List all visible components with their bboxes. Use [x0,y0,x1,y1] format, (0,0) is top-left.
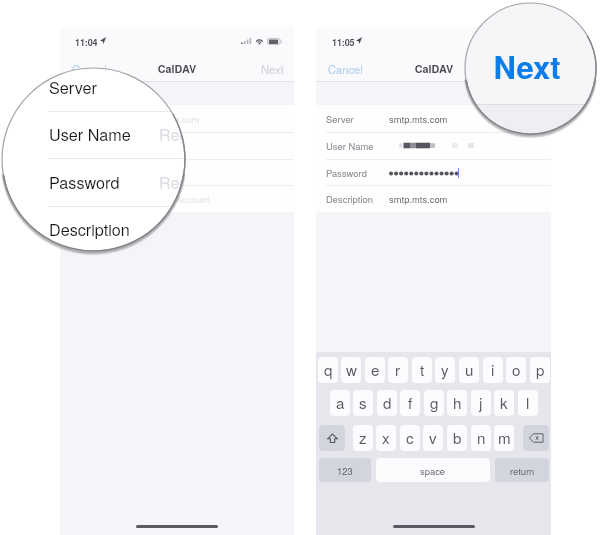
button[interactable]: f [400,390,420,416]
button[interactable]: Server [60,105,294,132]
button[interactable]: Description [316,185,551,212]
button[interactable]: x [376,425,396,451]
button[interactable]: Shift [319,425,345,451]
staticText: smtp.mts.com [141,112,200,125]
staticText: i [491,359,495,381]
staticText: g [430,392,439,414]
button[interactable]: Next [258,58,294,79]
staticText: o [512,359,521,381]
other: Location [356,37,362,44]
button[interactable]: w [341,357,361,383]
staticText: Password [326,166,367,179]
staticText: x [382,427,390,449]
button[interactable]: b [447,425,467,451]
button[interactable]: Password [316,159,551,186]
staticText: j [479,392,483,414]
staticText: return [510,464,535,477]
staticText: v [429,427,437,449]
staticText: Req [159,122,185,145]
staticText: Req [159,170,185,193]
staticText: User Name [326,139,374,152]
staticText: w [346,359,357,381]
staticText: Description [326,192,373,205]
button[interactable]: Password [60,159,294,186]
button[interactable]: h [447,390,467,416]
staticText: b [453,427,462,449]
button[interactable]: s [353,390,373,416]
staticText: k [500,392,508,414]
button[interactable]: Next [477,44,577,82]
staticText: a [336,392,345,414]
button[interactable]: g [424,390,444,416]
staticText: d [383,392,392,414]
staticText: Description [49,217,130,240]
button[interactable]: n [471,425,491,451]
button[interactable]: q [318,357,338,383]
staticText: CalDAV [137,61,217,76]
button[interactable]: r [388,357,408,383]
button[interactable]: o [506,357,526,383]
other: Location [100,37,106,44]
staticText: 11:04 [75,36,98,49]
staticText: e [371,359,380,381]
button[interactable]: k [494,390,514,416]
button[interactable]: u [459,357,479,383]
button[interactable]: 123 [319,458,371,482]
button[interactable]: i [483,357,503,383]
staticText: h [453,392,462,414]
staticText: space [420,464,446,477]
staticText: CalDAV [394,61,474,76]
button[interactable]: d [377,390,397,416]
button[interactable]: j [471,390,491,416]
button[interactable]: z [353,425,373,451]
staticText: Password [49,170,120,193]
staticText: Server [326,112,354,125]
staticText: Required [133,166,171,179]
staticText: c [406,427,414,449]
button[interactable]: Description [60,185,294,212]
staticText: f [408,392,413,414]
staticText: User Name [70,139,118,152]
button[interactable]: t [412,357,432,383]
staticText: l [526,392,530,414]
button[interactable]: m [494,425,514,451]
button[interactable]: User Name [60,132,294,159]
staticText: u [465,359,474,381]
button[interactable]: Backspace [523,425,549,451]
staticText: r [395,359,401,381]
staticText: z [359,427,367,449]
button[interactable]: l [518,390,538,416]
staticText: Server [49,75,97,98]
button[interactable]: space [376,458,490,482]
button[interactable]: Cancel [321,58,367,79]
staticText: 11:05 [332,36,355,49]
button[interactable]: y [435,357,455,383]
button[interactable]: return [495,458,549,482]
staticText: y [441,359,449,381]
other: Wi-Fi [255,38,264,44]
staticText: Cancel [328,61,363,77]
staticText: n [477,427,486,449]
staticText: smtp.mts.com [389,112,448,125]
staticText: Next [261,61,284,77]
button[interactable]: Server [316,105,551,132]
staticText: Next [518,61,541,77]
button[interactable]: p [530,357,550,383]
button[interactable]: c [400,425,420,451]
staticText: s [359,392,367,414]
button[interactable]: Cancel [65,58,111,79]
staticText: User Name [49,122,131,145]
other: Cellular signal [241,38,252,44]
button[interactable]: e [365,357,385,383]
staticText: m [498,427,511,449]
button[interactable]: Next [515,58,551,79]
button[interactable]: User Name [316,132,551,159]
other: Battery [267,38,282,45]
button[interactable]: v [423,425,443,451]
button[interactable]: a [330,390,350,416]
